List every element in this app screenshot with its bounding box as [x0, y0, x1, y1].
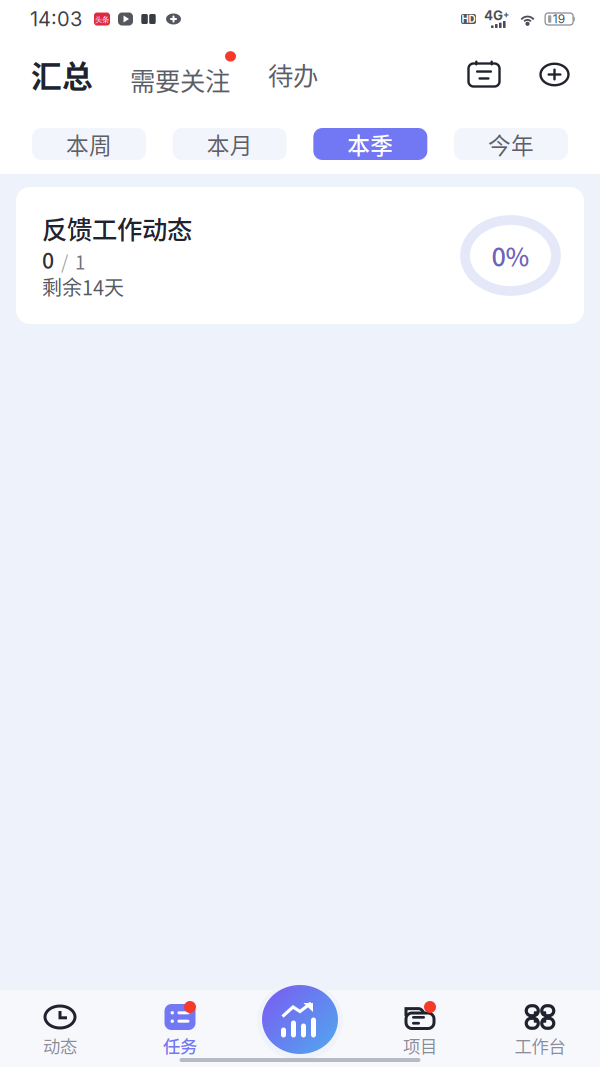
staticText: 本季 [347, 128, 393, 160]
button[interactable]: 本月 [173, 128, 287, 160]
button[interactable]: 新建 [539, 62, 570, 87]
button[interactable]: 反馈工作动态 [16, 187, 584, 324]
staticText: 14:03 [30, 7, 82, 31]
button[interactable]: 今年 [454, 128, 568, 160]
staticText: 1 [75, 248, 85, 275]
staticText: + [503, 8, 509, 20]
button[interactable]: 汇总 [31, 52, 93, 97]
button[interactable]: 工作台 [480, 986, 600, 1063]
staticText: 任务 [163, 1033, 197, 1058]
button[interactable]: 本季 [313, 128, 427, 160]
staticText: 今年 [488, 128, 534, 160]
staticText: 本周 [66, 128, 112, 160]
button[interactable]: 日程 [468, 60, 500, 88]
staticText: 19 [553, 12, 565, 26]
button[interactable]: 项目 [360, 986, 480, 1063]
staticText: 项目 [403, 1033, 437, 1058]
staticText: 需要关注 [130, 61, 230, 98]
staticText: 0 [42, 244, 54, 275]
staticText: / [61, 248, 68, 275]
staticText: 汇总 [31, 52, 93, 97]
button[interactable]: 需要关注 [130, 51, 236, 98]
staticText: 0% [491, 237, 529, 274]
staticText: 剩余14天 [42, 272, 124, 301]
button[interactable]: 动态 [0, 986, 120, 1063]
staticText: HD [461, 13, 475, 25]
staticText: 4G [484, 7, 503, 23]
staticText: 本月 [207, 128, 253, 160]
staticText: 头条 [95, 14, 109, 24]
button[interactable]: 统计 [262, 985, 338, 1054]
button[interactable]: 待办 [268, 56, 318, 93]
staticText: 待办 [268, 56, 318, 93]
button[interactable]: 任务 [120, 986, 240, 1063]
staticText: 工作台 [514, 1033, 565, 1058]
staticText: 动态 [43, 1033, 77, 1058]
button[interactable]: 本周 [32, 128, 146, 160]
staticText: 反馈工作动态 [42, 210, 192, 246]
